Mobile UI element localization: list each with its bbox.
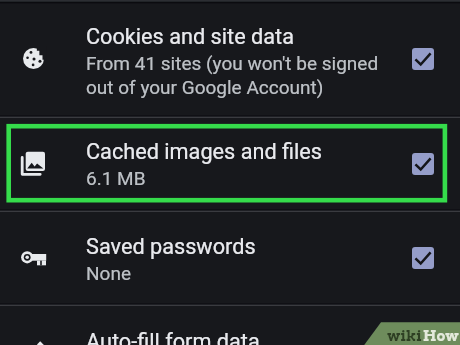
- staticText: Saved passwords: [86, 234, 256, 259]
- staticText: How: [423, 327, 459, 345]
- staticText: From 41 sites (you won't be signed out o…: [86, 52, 379, 99]
- staticText: Auto-fill form data: [86, 329, 260, 345]
- other: Auto-fill form data: [20, 340, 46, 345]
- button[interactable]: Cached images and files, checked: [412, 153, 434, 175]
- button[interactable]: Cookies and site data, checked: [412, 48, 434, 70]
- staticText: Cookies and site data: [86, 24, 294, 49]
- other: Cookies: [22, 47, 45, 70]
- other: Cached images: [19, 149, 46, 176]
- button[interactable]: Saved passwords, checked: [412, 247, 434, 269]
- button[interactable]: Auto-fill form data: [0, 306, 460, 345]
- staticText: None: [86, 262, 131, 284]
- button[interactable]: Cached images: [0, 118, 460, 211]
- button[interactable]: Saved passwords: [0, 212, 460, 305]
- staticText: wiki: [387, 327, 422, 345]
- staticText: Cached images and files: [86, 139, 323, 164]
- button[interactable]: Cookies: [0, 3, 460, 117]
- other: Saved passwords: [20, 246, 46, 272]
- staticText: 6.1 MB: [86, 167, 146, 189]
